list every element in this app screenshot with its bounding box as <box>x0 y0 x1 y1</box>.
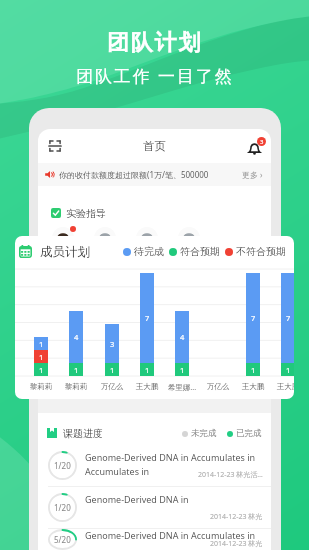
button[interactable]: 5/20 <box>38 529 271 550</box>
staticText: 3 <box>260 138 264 146</box>
staticText: 更多 › <box>242 169 263 180</box>
staticText: 黎莉莉 <box>60 382 92 391</box>
staticText: 2014-12-23 林光活… <box>198 470 263 480</box>
staticText: 1 <box>145 365 150 375</box>
staticText: 团队工作 一目了然 <box>76 64 234 87</box>
staticText: 4 <box>74 332 79 342</box>
staticText: 1 <box>180 365 185 375</box>
staticText: 7 <box>145 313 150 323</box>
staticText: 王大鹏 <box>131 382 163 391</box>
staticText: 你的收付款额度超过限额(1万/笔、500000 <box>59 169 242 180</box>
staticText: 王大鹏 <box>237 382 269 391</box>
button[interactable]: Member <box>52 227 74 249</box>
staticText: 未完成 <box>191 428 217 439</box>
staticText: 2014-12-23 林光 <box>210 539 263 549</box>
staticText: 希里娜… <box>166 382 198 392</box>
staticText: 待完成 <box>134 245 164 258</box>
button[interactable]: 你的收付款额度超过限额(1万/笔、500000 <box>38 163 271 186</box>
staticText: 3 <box>110 339 115 349</box>
staticText: 1/20 <box>54 502 71 513</box>
button[interactable]: Member <box>136 227 158 249</box>
button[interactable]: 1/20 <box>38 487 271 528</box>
staticText: Genome-Derived DNA in Accumulates in Acc… <box>85 451 256 478</box>
staticText: 团队计划 <box>107 29 203 57</box>
staticText: 成员计划 <box>40 244 90 259</box>
staticText: 1 <box>39 365 44 375</box>
staticText: 1 <box>39 352 44 362</box>
staticText: Genome-Derived DNA in Accumulates in <box>85 529 256 541</box>
button[interactable]: Notifications <box>248 137 266 155</box>
staticText: 5/20 <box>54 534 71 545</box>
staticText: 1 <box>74 365 79 375</box>
staticText: 首页 <box>143 139 166 153</box>
staticText: 1/20 <box>54 460 71 471</box>
staticText: 课题进度 <box>63 427 103 439</box>
staticText: 实验指导 <box>66 207 106 218</box>
staticText: 7 <box>286 313 291 323</box>
button[interactable]: 1/20 <box>38 445 271 486</box>
staticText: 1 <box>251 365 256 375</box>
button[interactable]: Member <box>178 227 200 249</box>
staticText: 4 <box>180 332 185 342</box>
staticText: 已完成 <box>236 428 262 439</box>
staticText: 万亿么 <box>202 382 234 391</box>
staticText: 黎莉莉 <box>25 382 57 391</box>
staticText: 万亿么 <box>96 382 128 391</box>
staticText: 1 <box>286 365 291 375</box>
staticText: 7 <box>251 313 256 323</box>
staticText: 不符合预期 <box>236 245 286 258</box>
button[interactable]: Member <box>94 227 116 249</box>
staticText: 符合预期 <box>180 245 220 258</box>
staticText: 2014-12-23 林光 <box>210 512 263 522</box>
staticText: Genome-Derived DNA in <box>85 493 189 505</box>
button[interactable]: Scan <box>49 140 61 152</box>
staticText: 王大鹏 <box>272 382 294 391</box>
staticText: 1 <box>39 339 44 349</box>
staticText: 1 <box>110 365 115 375</box>
